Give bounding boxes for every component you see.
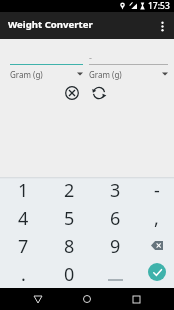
staticText: -: [89, 51, 92, 63]
button[interactable]: 3: [92, 177, 139, 204]
button[interactable]: Backspace: [139, 232, 174, 260]
button[interactable]: Gram (g): [89, 69, 168, 80]
staticText: 1: [18, 178, 29, 203]
staticText: 3: [110, 178, 121, 203]
button[interactable]: 1: [0, 177, 46, 204]
button[interactable]: .: [0, 260, 46, 288]
button[interactable]: 6: [92, 204, 139, 232]
button[interactable]: Swap units: [88, 82, 110, 104]
button[interactable]: Gram (g): [10, 69, 83, 80]
button[interactable]: 2: [46, 177, 92, 204]
staticText: 2: [64, 178, 75, 203]
other: Done: [148, 263, 166, 281]
staticText: Gram (g): [89, 69, 122, 80]
staticText: 6: [110, 206, 121, 231]
staticText: 8: [64, 234, 75, 259]
staticText: .: [21, 262, 26, 287]
staticText: ,: [154, 206, 159, 231]
button[interactable]: Recents: [125, 288, 147, 310]
button[interactable]: Back: [27, 288, 49, 310]
button[interactable]: Clear: [61, 82, 83, 104]
button[interactable]: 4: [0, 204, 46, 232]
staticText: 5: [64, 206, 75, 231]
button[interactable]: 7: [0, 232, 46, 260]
staticText: -: [154, 178, 160, 203]
staticText: 7: [18, 234, 29, 259]
button[interactable]: Home: [76, 288, 98, 310]
button[interactable]: Space: [92, 260, 139, 288]
button[interactable]: ,: [139, 204, 174, 232]
button[interactable]: Done: [139, 260, 174, 288]
staticText: 0: [64, 262, 75, 287]
staticText: Weight Converter: [8, 18, 93, 31]
staticText: 17:53: [148, 0, 170, 12]
button[interactable]: 8: [46, 232, 92, 260]
button[interactable]: 5: [46, 204, 92, 232]
staticText: 9: [110, 234, 121, 259]
button[interactable]: More options: [150, 14, 174, 38]
other: Backspace: [151, 241, 163, 250]
staticText: Gram (g): [10, 69, 43, 80]
button[interactable]: -: [139, 177, 174, 204]
staticText: 4: [18, 206, 29, 231]
button[interactable]: 0: [46, 260, 92, 288]
button[interactable]: 9: [92, 232, 139, 260]
